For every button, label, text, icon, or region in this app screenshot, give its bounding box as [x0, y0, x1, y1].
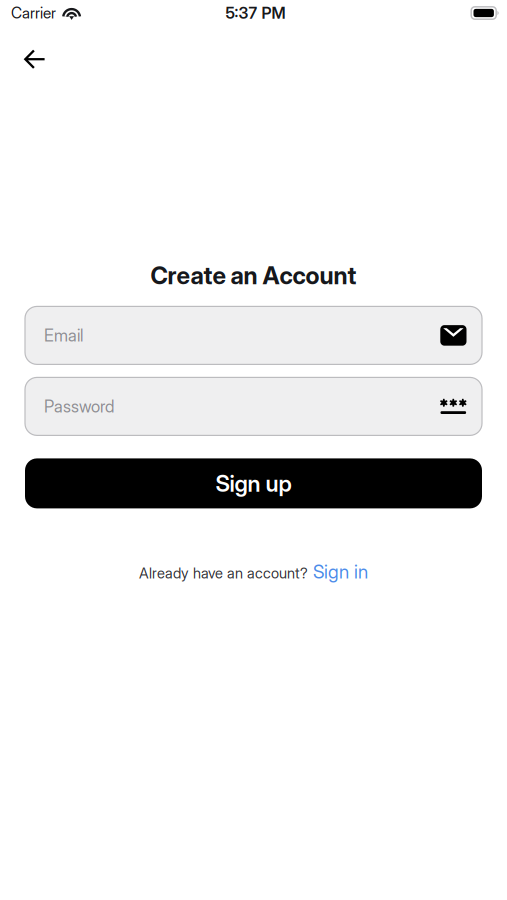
staticText: Password [44, 396, 114, 416]
staticText: 5:37 PM [225, 3, 285, 23]
staticText: Sign in [313, 560, 368, 583]
staticText: Email [44, 325, 83, 345]
staticText: Carrier [11, 4, 56, 22]
button[interactable]: Back [13, 38, 56, 80]
button[interactable]: Sign up [25, 458, 482, 508]
staticText: Already have an account? [139, 564, 308, 582]
button[interactable]: Sign in [313, 560, 368, 583]
staticText: Create an Account [150, 261, 356, 290]
staticText: Sign up [215, 470, 291, 497]
